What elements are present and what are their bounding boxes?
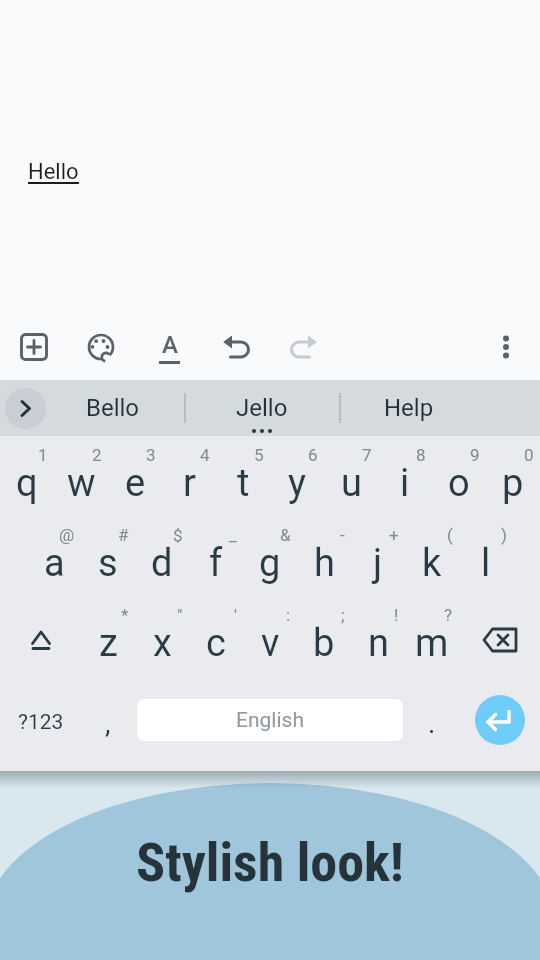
staticText: !	[394, 605, 399, 625]
button[interactable]: h	[297, 520, 351, 600]
button[interactable]: Help	[349, 380, 469, 436]
staticText: +	[389, 525, 399, 545]
button[interactable]: f	[189, 520, 243, 600]
staticText: -	[340, 525, 345, 545]
button[interactable]: z	[81, 600, 135, 680]
button[interactable]: p	[486, 440, 540, 520]
button[interactable]	[0, 600, 81, 680]
staticText: o	[448, 461, 470, 506]
staticText: p	[502, 461, 524, 506]
button[interactable]: a	[27, 520, 81, 600]
staticText: Hello	[28, 159, 79, 185]
staticText: u	[341, 461, 362, 506]
staticText: 2	[92, 445, 102, 465]
staticText: r	[183, 461, 196, 506]
button[interactable]	[5, 388, 46, 429]
button[interactable]: x	[135, 600, 189, 680]
staticText: (	[447, 525, 453, 545]
button[interactable]: ,	[81, 680, 135, 760]
staticText: z	[99, 621, 118, 666]
button[interactable]: o	[432, 440, 486, 520]
staticText: s	[98, 541, 118, 586]
staticText: )	[501, 525, 507, 545]
button[interactable]	[484, 325, 528, 369]
staticText: y	[288, 461, 306, 506]
button[interactable]: i	[378, 440, 432, 520]
staticText: i	[400, 461, 410, 506]
staticText: 3	[146, 445, 156, 465]
staticText: '	[234, 605, 237, 625]
button[interactable]: t	[216, 440, 270, 520]
staticText: .	[428, 707, 436, 740]
staticText: b	[313, 621, 335, 666]
button[interactable]: k	[405, 520, 459, 600]
staticText: ,	[105, 707, 111, 740]
button[interactable]: Bello	[53, 380, 173, 436]
button[interactable]: s	[81, 520, 135, 600]
button[interactable]: l	[459, 520, 513, 600]
button[interactable]: b	[297, 600, 351, 680]
staticText: Help	[384, 394, 434, 422]
staticText: k	[422, 541, 442, 586]
button[interactable]	[12, 325, 56, 369]
staticText: Jello	[236, 394, 288, 422]
staticText: x	[153, 621, 172, 666]
staticText: m	[415, 621, 449, 666]
button[interactable]: A	[147, 325, 191, 369]
button[interactable]	[459, 680, 540, 760]
staticText: n	[368, 621, 389, 666]
staticText: a	[44, 541, 65, 586]
staticText: v	[261, 621, 280, 666]
staticText: $	[173, 525, 183, 545]
staticText: t	[237, 461, 250, 506]
button[interactable]: d	[135, 520, 189, 600]
staticText: ?123	[18, 710, 64, 735]
staticText: "	[177, 605, 183, 625]
button[interactable]: Jello	[202, 380, 322, 436]
staticText: 1	[38, 445, 48, 465]
button[interactable]: q	[0, 440, 54, 520]
button[interactable]: English	[135, 680, 405, 760]
staticText: 7	[362, 445, 372, 465]
button[interactable]	[79, 325, 123, 369]
staticText: h	[314, 541, 335, 586]
staticText: 9	[470, 445, 480, 465]
button[interactable]: m	[405, 600, 459, 680]
staticText: @	[59, 525, 75, 545]
button[interactable]	[214, 325, 258, 369]
staticText: c	[206, 621, 226, 666]
staticText: e	[125, 461, 146, 506]
button[interactable]: u	[324, 440, 378, 520]
staticText: w	[67, 461, 96, 506]
button[interactable]: g	[243, 520, 297, 600]
button[interactable]	[459, 600, 540, 680]
staticText: English	[236, 708, 304, 733]
staticText: *	[121, 605, 129, 625]
staticText: g	[259, 541, 281, 586]
staticText: A	[162, 331, 178, 359]
staticText: 4	[200, 445, 210, 465]
staticText: l	[481, 541, 491, 586]
staticText: _	[229, 525, 237, 545]
staticText: 0	[524, 445, 534, 465]
staticText: q	[16, 461, 38, 506]
staticText: &	[280, 525, 291, 545]
button[interactable]: c	[189, 600, 243, 680]
button[interactable]: .	[405, 680, 459, 760]
staticText: ?	[444, 605, 453, 625]
staticText: 8	[416, 445, 426, 465]
button[interactable]: e	[108, 440, 162, 520]
button[interactable]: v	[243, 600, 297, 680]
button[interactable]: j	[351, 520, 405, 600]
button[interactable]: r	[162, 440, 216, 520]
staticText: d	[151, 541, 173, 586]
button[interactable]: n	[351, 600, 405, 680]
button[interactable]	[282, 325, 326, 369]
button[interactable]: ?123	[0, 680, 81, 760]
staticText: Stylish look!	[136, 831, 404, 894]
button[interactable]: w	[54, 440, 108, 520]
button[interactable]: y	[270, 440, 324, 520]
staticText: :	[286, 605, 291, 625]
staticText: f	[209, 541, 223, 586]
staticText: 5	[254, 445, 264, 465]
